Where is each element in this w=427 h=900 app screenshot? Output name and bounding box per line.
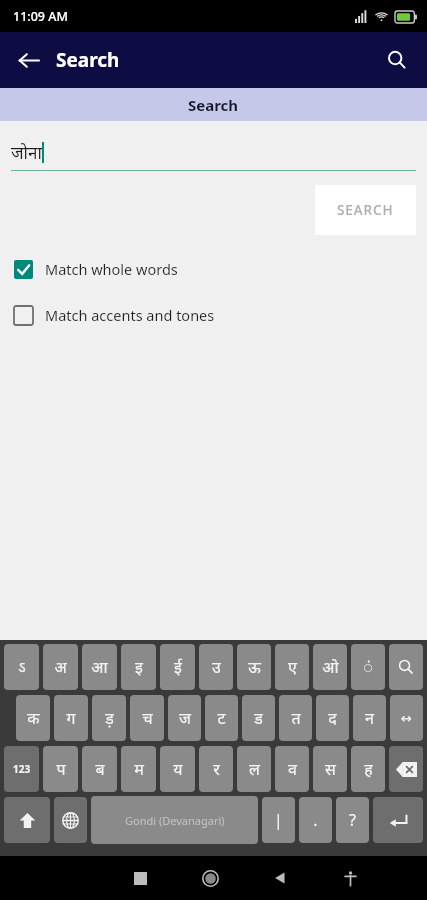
- button[interactable]: च: [130, 695, 164, 741]
- staticText: ट: [217, 707, 226, 729]
- staticText: ग: [66, 707, 76, 729]
- staticText: ?: [349, 809, 356, 831]
- staticText: ह: [364, 758, 373, 780]
- button[interactable]: ह: [351, 746, 385, 792]
- button[interactable]: Home: [175, 856, 245, 900]
- button[interactable]: Match accents and tones: [0, 301, 427, 329]
- staticText: न: [365, 707, 374, 729]
- button[interactable]: व: [275, 746, 309, 792]
- button[interactable]: जोना: [11, 141, 416, 171]
- staticText: ऽ: [18, 656, 26, 678]
- staticText: य: [173, 758, 183, 780]
- staticText: SEARCH: [337, 201, 394, 219]
- staticText: |: [274, 809, 283, 831]
- button[interactable]: Back: [245, 856, 315, 900]
- button[interactable]: ई: [160, 644, 195, 690]
- button[interactable]: क: [16, 695, 50, 741]
- button[interactable]: ड़: [92, 695, 126, 741]
- button[interactable]: Accessibility: [315, 856, 385, 900]
- staticText: स: [325, 758, 336, 780]
- staticText: Search: [56, 47, 120, 73]
- staticText: क: [27, 707, 40, 729]
- button[interactable]: न: [353, 695, 386, 741]
- staticText: Match whole words: [45, 259, 178, 279]
- staticText: Search: [188, 95, 239, 115]
- button[interactable]: र: [199, 746, 233, 792]
- button[interactable]: Key: [389, 746, 423, 792]
- button[interactable]: ऊ: [237, 644, 271, 690]
- button[interactable]: Key: [54, 797, 87, 843]
- button[interactable]: Key: [373, 797, 423, 843]
- staticText: Match accents and tones: [45, 305, 215, 325]
- button[interactable]: ऽ: [4, 644, 39, 690]
- staticText: ↔: [401, 711, 412, 726]
- button[interactable]: ओ: [313, 644, 347, 690]
- button[interactable]: उ: [199, 644, 233, 690]
- button[interactable]: य: [160, 746, 195, 792]
- button[interactable]: ज: [168, 695, 201, 741]
- button[interactable]: Key: [389, 644, 423, 690]
- staticText: र: [213, 758, 220, 780]
- staticText: प: [56, 758, 66, 780]
- staticText: ज: [179, 707, 191, 729]
- staticText: च: [142, 707, 153, 729]
- staticText: 123: [13, 762, 31, 776]
- staticText: म: [134, 758, 144, 780]
- staticText: अ: [54, 656, 67, 678]
- button[interactable]: |: [262, 797, 295, 843]
- staticText: ब: [95, 758, 105, 780]
- button[interactable]: ?: [336, 797, 369, 843]
- button[interactable]: ं: [351, 644, 385, 690]
- staticText: 11:09 AM: [13, 8, 68, 25]
- button[interactable]: ट: [205, 695, 238, 741]
- button[interactable]: Recent apps: [105, 856, 175, 900]
- button[interactable]: Match whole words: [0, 255, 427, 283]
- staticText: व: [288, 758, 297, 780]
- staticText: ओ: [322, 656, 339, 678]
- staticText: ई: [174, 656, 182, 678]
- staticText: ं: [363, 656, 373, 678]
- button[interactable]: ल: [237, 746, 271, 792]
- staticText: द: [328, 707, 337, 729]
- button[interactable]: Key: [4, 746, 39, 792]
- button[interactable]: .: [299, 797, 332, 843]
- button[interactable]: Gondi (Devanagari): [91, 796, 258, 844]
- staticText: ल: [249, 758, 260, 780]
- staticText: जोना: [11, 141, 42, 164]
- staticText: Gondi (Devanagari): [125, 813, 225, 828]
- staticText: .: [313, 809, 318, 831]
- staticText: ड़: [105, 707, 114, 729]
- button[interactable]: द: [316, 695, 349, 741]
- staticText: ऊ: [248, 656, 261, 678]
- button[interactable]: SEARCH: [315, 185, 416, 235]
- staticText: त: [291, 707, 301, 729]
- button[interactable]: Search: [375, 38, 419, 82]
- button[interactable]: Back: [6, 38, 50, 82]
- button[interactable]: Key: [390, 695, 423, 741]
- button[interactable]: अ: [43, 644, 78, 690]
- staticText: उ: [212, 656, 221, 678]
- button[interactable]: ड: [242, 695, 275, 741]
- button[interactable]: Key: [4, 797, 50, 843]
- staticText: इ: [135, 656, 143, 678]
- button[interactable]: स: [313, 746, 347, 792]
- staticText: ए: [288, 656, 297, 678]
- staticText: ड: [254, 707, 263, 729]
- button[interactable]: म: [121, 746, 156, 792]
- staticText: आ: [91, 656, 108, 678]
- button[interactable]: ए: [275, 644, 309, 690]
- button[interactable]: त: [279, 695, 312, 741]
- button[interactable]: ब: [82, 746, 117, 792]
- button[interactable]: ग: [54, 695, 88, 741]
- button[interactable]: आ: [82, 644, 117, 690]
- button[interactable]: इ: [121, 644, 156, 690]
- button[interactable]: प: [43, 746, 78, 792]
